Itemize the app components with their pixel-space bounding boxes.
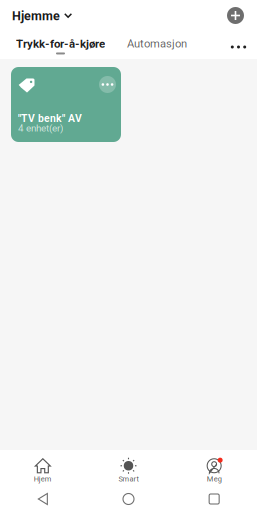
button[interactable]: Meg — [171, 450, 257, 486]
button[interactable]: Recent apps — [171, 486, 257, 512]
button[interactable]: Add — [222, 0, 257, 31]
staticText: "TV benk" AV — [18, 112, 82, 124]
button[interactable]: Home — [86, 486, 171, 512]
button[interactable]: More options — [223, 31, 257, 59]
staticText: Automasjon — [127, 37, 187, 50]
staticText: Meg — [207, 474, 222, 483]
staticText: Trykk-for-å-kjøre — [16, 37, 105, 50]
button[interactable]: Trykk-for-å-kjøre — [0, 31, 118, 59]
button[interactable]: Hjem — [0, 450, 86, 486]
staticText: Hjemme — [12, 9, 60, 23]
staticText: 4 enhet(er) — [18, 122, 63, 134]
button[interactable]: Automasjon — [118, 31, 196, 59]
button[interactable]: Smart — [86, 450, 171, 486]
staticText: Hjem — [34, 474, 52, 483]
button[interactable]: Hjemme — [0, 0, 82, 31]
button[interactable]: "TV benk" AV — [11, 67, 121, 142]
button[interactable]: Back — [0, 486, 86, 512]
staticText: Smart — [118, 474, 138, 483]
